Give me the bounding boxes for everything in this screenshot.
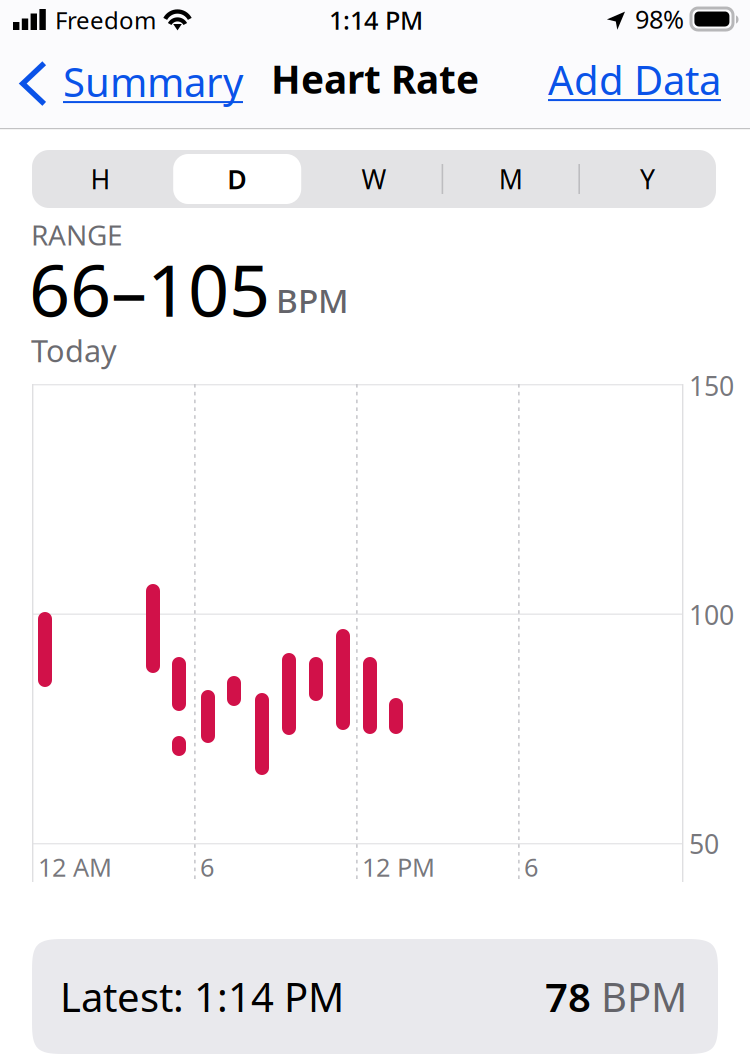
staticText: 98% [635, 2, 684, 36]
staticText: 6 [524, 850, 538, 884]
staticText: Today [31, 330, 117, 371]
button[interactable]: W [306, 150, 442, 208]
staticText: 66–105 [29, 241, 270, 337]
staticText: Heart Rate [271, 53, 479, 104]
staticText: Summary [63, 55, 243, 108]
staticText: D [227, 161, 247, 197]
button[interactable]: Y [579, 150, 716, 208]
button[interactable]: Latest: 1:14 PM [32, 939, 718, 1054]
staticText: 100 [689, 597, 734, 632]
button[interactable]: D [169, 150, 306, 208]
staticText: 12 PM [362, 850, 435, 884]
staticText: 50 [689, 826, 719, 861]
button[interactable]: Add Data [548, 53, 721, 106]
staticText: Y [640, 161, 655, 197]
staticText: 78 [545, 970, 591, 1023]
staticText: 12 AM [38, 850, 112, 884]
staticText: Latest: 1:14 PM [60, 970, 344, 1023]
staticText: M [499, 161, 523, 197]
button[interactable]: H [32, 150, 169, 208]
staticText: H [90, 161, 110, 197]
button[interactable]: Summary [20, 55, 243, 112]
staticText: Add Data [548, 53, 721, 106]
button[interactable]: M [442, 150, 579, 208]
staticText: BPM [591, 970, 687, 1023]
staticText: RANGE [31, 216, 123, 253]
staticText: W [361, 161, 386, 197]
staticText: BPM [276, 278, 349, 322]
staticText: 1:14 PM [329, 3, 423, 37]
staticText: 150 [689, 368, 734, 403]
staticText: Freedom [55, 4, 156, 36]
staticText: 6 [200, 850, 214, 884]
